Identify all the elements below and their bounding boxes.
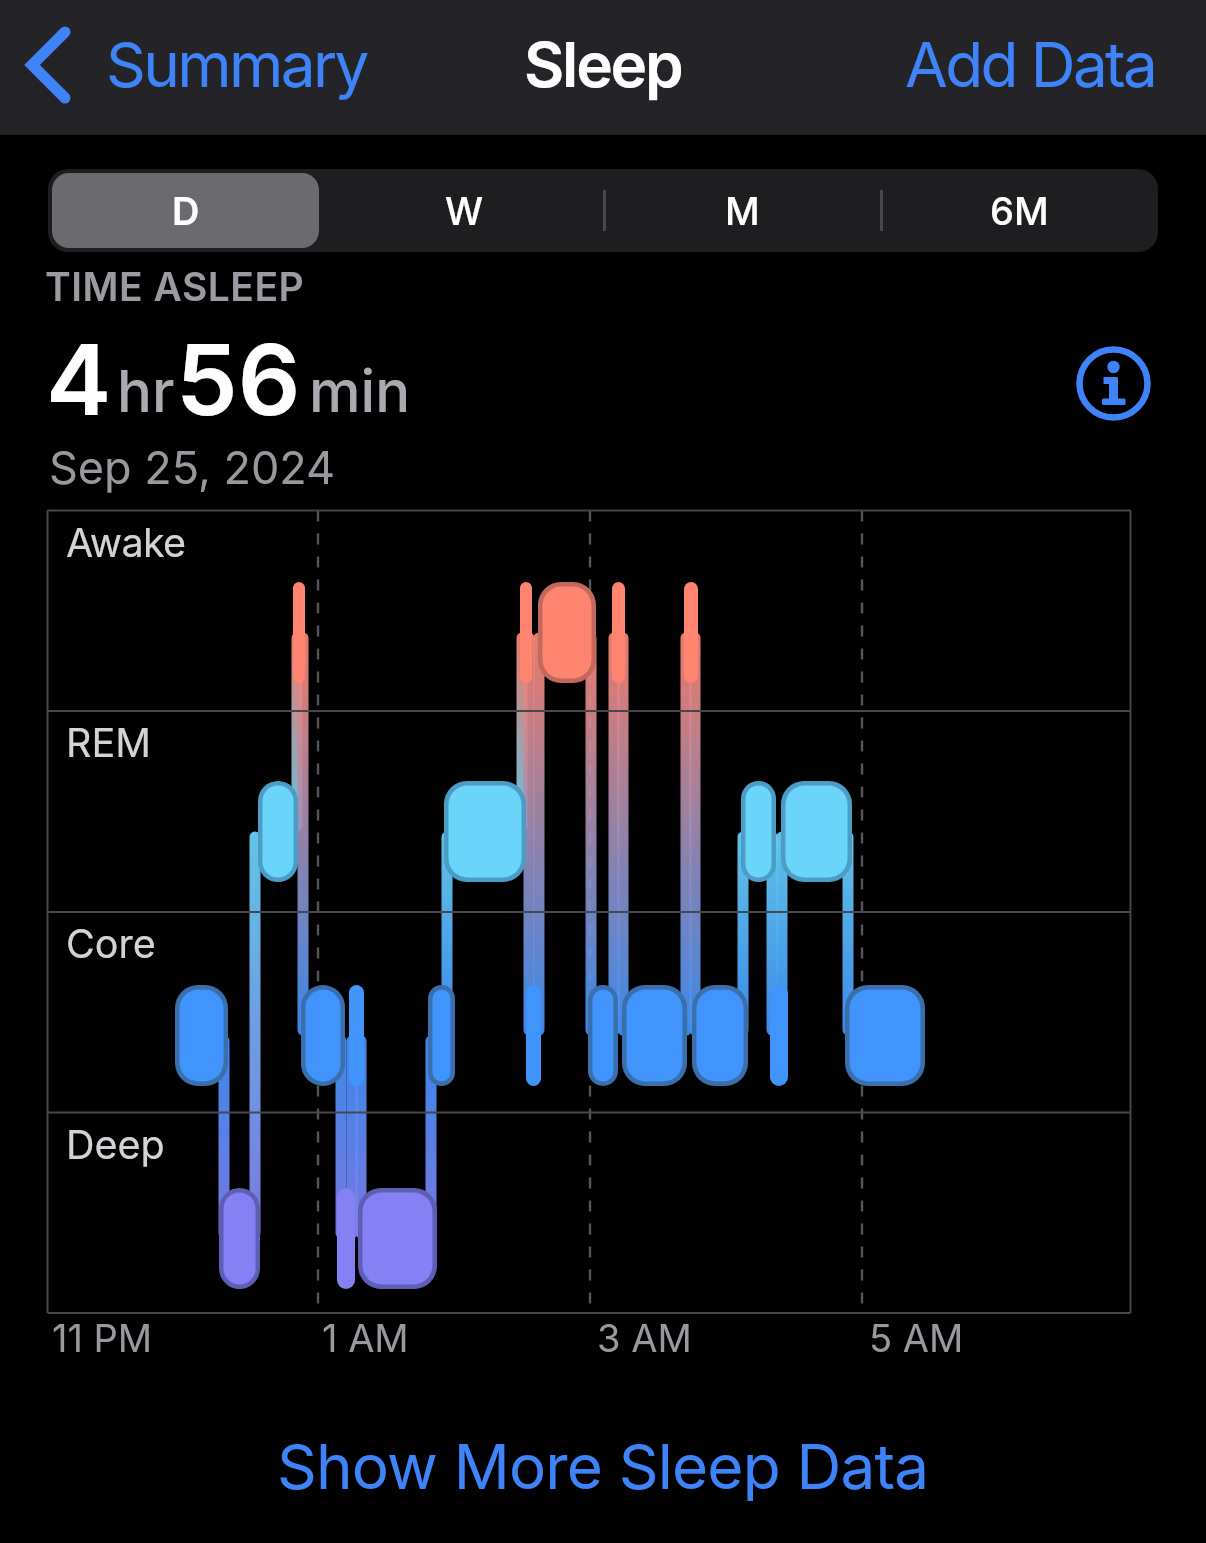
staticText: min: [309, 356, 411, 426]
staticText: 6M: [990, 188, 1049, 234]
button[interactable]: 6M: [881, 169, 1158, 252]
staticText: 11 PM: [52, 1315, 153, 1361]
staticText: Sep 25, 2024: [49, 440, 336, 494]
button[interactable]: M: [603, 169, 881, 252]
button[interactable]: Show More Sleep Data: [277, 1429, 929, 1504]
staticText: Summary: [106, 27, 367, 102]
staticText: Show More Sleep Data: [277, 1429, 929, 1504]
staticText: Awake: [66, 519, 186, 567]
staticText: 4: [46, 320, 112, 439]
staticText: 56: [176, 320, 301, 439]
staticText: 1 AM: [322, 1315, 409, 1361]
staticText: hr: [117, 356, 175, 426]
button[interactable]: Add Data: [905, 14, 1156, 122]
staticText: Deep: [66, 1121, 165, 1169]
staticText: 5 AM: [869, 1315, 964, 1361]
staticText: D: [172, 188, 200, 234]
staticText: REM: [66, 719, 151, 767]
button[interactable]: D: [52, 173, 319, 248]
staticText: W: [445, 188, 484, 234]
button[interactable]: Summary: [24, 14, 374, 122]
staticText: 3 AM: [597, 1315, 692, 1361]
staticText: Core: [66, 920, 156, 968]
staticText: M: [725, 188, 760, 234]
staticText: TIME ASLEEP: [45, 263, 305, 310]
staticText: Add Data: [905, 27, 1156, 102]
button[interactable]: W: [325, 169, 603, 252]
staticText: Sleep: [524, 27, 682, 102]
button[interactable]: [1076, 346, 1151, 421]
